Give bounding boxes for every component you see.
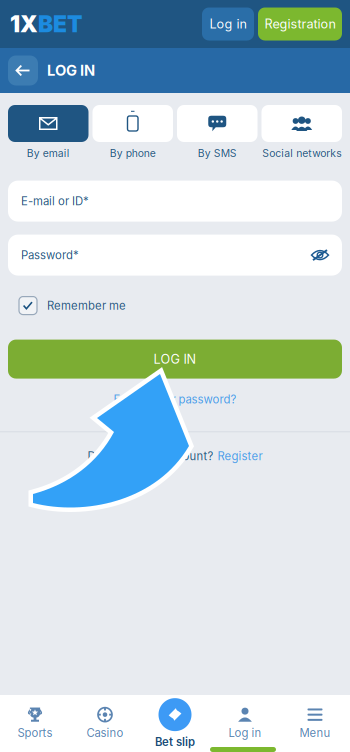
button[interactable]: Casino (70, 695, 140, 752)
staticText: Menu (299, 726, 330, 740)
staticText: Registration (264, 16, 335, 32)
button[interactable]: Forgot your password? (113, 393, 236, 406)
button[interactable]: Log in (210, 695, 280, 752)
button[interactable]: Menu (280, 695, 350, 752)
button[interactable]: E-mail or ID* (8, 181, 342, 222)
staticText: Casino (86, 726, 123, 740)
button[interactable]: Social networks (261, 105, 342, 160)
button[interactable]: Sports (0, 695, 70, 752)
staticText: By email (27, 147, 70, 160)
staticText: E-mail or ID* (21, 194, 89, 208)
button[interactable]: Back (8, 55, 38, 85)
staticText: By phone (110, 147, 156, 160)
button[interactable]: By email (8, 105, 88, 160)
staticText: Sports (17, 726, 52, 740)
button[interactable]: By SMS (177, 105, 257, 160)
staticText: Remember me (47, 299, 126, 312)
button[interactable]: Log in (202, 7, 254, 40)
staticText: By SMS (198, 147, 237, 160)
button[interactable]: LOG IN (8, 340, 342, 379)
button[interactable]: Register (217, 449, 262, 463)
staticText: Social networks (262, 147, 341, 160)
staticText: Log in (228, 726, 261, 740)
staticText: Password* (21, 248, 79, 262)
staticText: Log in (209, 16, 246, 32)
button[interactable]: By phone (92, 105, 173, 160)
button[interactable]: Remember me (19, 297, 342, 315)
button[interactable]: Registration (258, 7, 342, 40)
staticText: Register (217, 449, 262, 463)
button[interactable]: Bet slip (140, 695, 210, 752)
staticText: LOG IN (47, 62, 95, 79)
staticText: 1X (10, 10, 38, 38)
button[interactable]: Password* (8, 235, 342, 276)
staticText: Bet slip (155, 735, 195, 749)
staticText: Forgot your password? (113, 393, 236, 406)
staticText: LOG IN (153, 351, 196, 367)
staticText: Don't have an account? (87, 449, 213, 463)
staticText: BET (38, 10, 82, 38)
